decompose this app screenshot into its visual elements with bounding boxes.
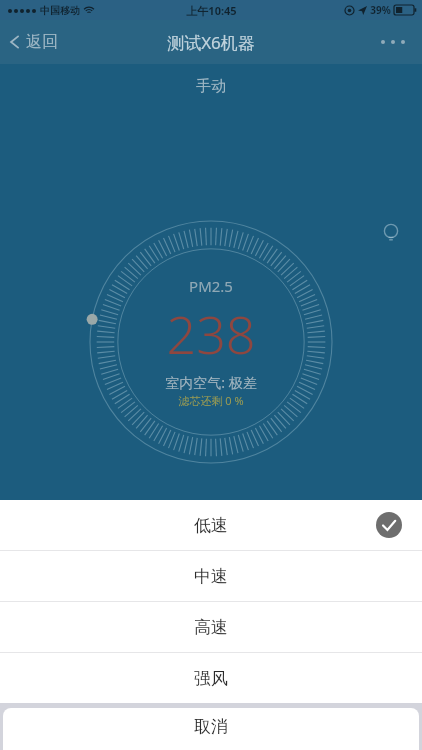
staticText: 返回 (26, 32, 58, 52)
staticText: 室内空气: 极差 (165, 373, 257, 392)
button[interactable]: 取消 (3, 708, 419, 750)
staticText: 低速 (194, 515, 228, 536)
staticText: 中国移动 (40, 4, 80, 17)
button[interactable]: 强风 (0, 653, 422, 703)
button[interactable]: 高速 (0, 602, 422, 652)
staticText: 取消 (194, 716, 228, 737)
staticText: 上午10:45 (186, 3, 237, 18)
staticText: 手动 (196, 77, 226, 96)
staticText: 39% (370, 3, 391, 17)
button[interactable]: Light (371, 213, 411, 253)
button[interactable]: 低速 (0, 500, 422, 550)
staticText: 测试X6机器 (167, 31, 255, 54)
staticText: 强风 (194, 668, 228, 689)
staticText: 滤芯还剩 0 % (178, 393, 244, 408)
button[interactable]: 返回 (0, 26, 68, 58)
button[interactable]: 中速 (0, 551, 422, 601)
button[interactable]: More options (364, 28, 422, 56)
staticText: 高速 (194, 617, 228, 638)
staticText: 中速 (194, 566, 228, 587)
staticText: 238 (166, 298, 256, 369)
staticText: PM2.5 (189, 276, 233, 296)
